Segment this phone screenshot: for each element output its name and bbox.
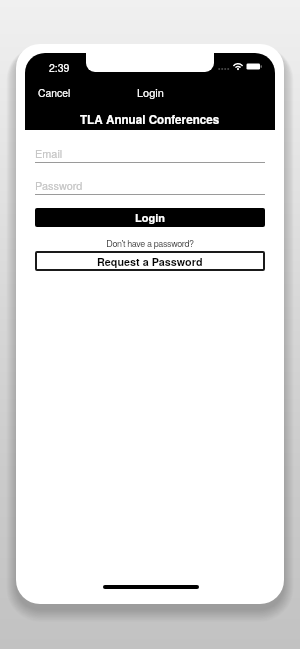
staticText: Login — [135, 210, 165, 226]
button[interactable]: Cancel — [25, 81, 84, 103]
staticText: 2:39 — [49, 60, 70, 75]
button[interactable]: Request a Password — [35, 251, 265, 271]
staticText: Cancel — [38, 85, 71, 99]
staticText: TLA Annual Conferences — [80, 111, 220, 128]
staticText: Login — [137, 84, 164, 100]
staticText: Don't have a password? — [106, 237, 194, 250]
staticText: Email — [35, 145, 63, 161]
staticText: Request a Password — [97, 254, 203, 269]
staticText: Password — [35, 177, 83, 193]
button[interactable]: Login — [35, 208, 265, 227]
